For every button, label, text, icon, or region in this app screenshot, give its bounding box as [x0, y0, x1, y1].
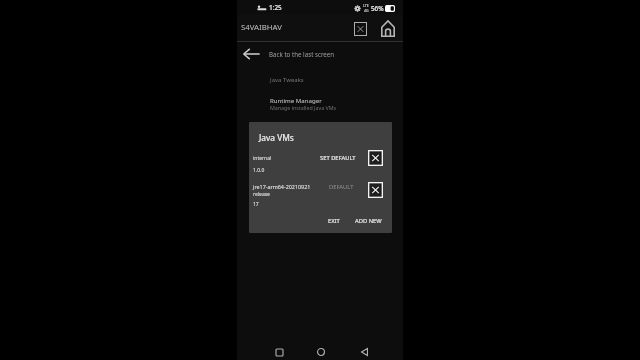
staticText: Back to the last screen: [269, 50, 335, 58]
button[interactable]: ADD NEW: [352, 214, 385, 228]
button[interactable]: EXIT: [325, 214, 343, 228]
staticText: Java Tweaks: [270, 76, 304, 84]
staticText: S4VAIBHAV: [241, 22, 282, 33]
button[interactable]: SET DEFAULT: [317, 151, 359, 165]
button[interactable]: Back: [354, 342, 374, 360]
staticText: 4G: [364, 8, 369, 13]
staticText: 1.0.0: [253, 167, 265, 174]
staticText: 1:25: [269, 3, 282, 12]
button[interactable]: Close: [350, 19, 370, 39]
staticText: SET DEFAULT: [320, 154, 356, 162]
button[interactable]: Back to the last screen: [237, 43, 403, 65]
staticText: release: [253, 191, 270, 198]
button[interactable]: Home: [378, 18, 398, 38]
staticText: ADD NEW: [355, 217, 382, 225]
button[interactable]: Home: [311, 342, 331, 360]
staticText: Manage installed Java VMs: [270, 104, 337, 111]
staticText: jre17-arm64-20210921: [253, 183, 311, 190]
staticText: LTE: [363, 3, 369, 8]
button[interactable]: Delete: [365, 179, 386, 200]
button[interactable]: Recents: [269, 342, 289, 360]
staticText: 56%: [371, 4, 384, 13]
staticText: internal: [253, 155, 272, 162]
staticText: DEFAULT: [329, 183, 354, 191]
staticText: Java VMs: [259, 132, 294, 143]
staticText: EXIT: [328, 217, 340, 225]
button[interactable]: Delete: [365, 147, 386, 168]
staticText: 17: [253, 201, 259, 208]
staticText: Runtime Manager: [270, 96, 322, 104]
button[interactable]: Runtime Manager: [237, 92, 403, 114]
button[interactable]: DEFAULT: [326, 180, 357, 194]
